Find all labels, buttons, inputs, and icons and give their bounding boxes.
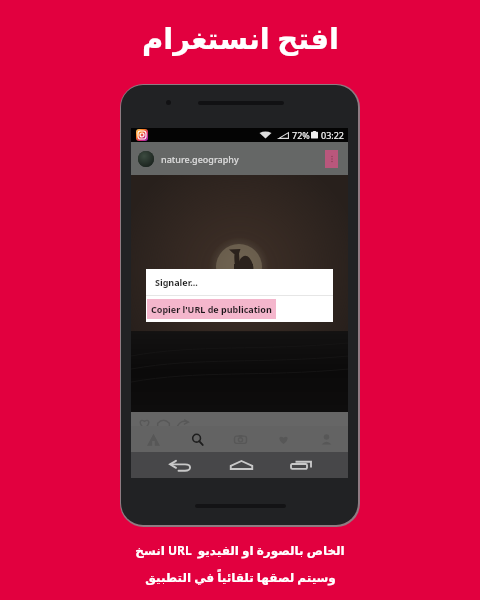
staticText: Signaler... — [155, 276, 198, 288]
staticText: وسيتم لصقها تلقائياً في التطبيق — [145, 569, 336, 585]
staticText: Copier l'URL de publication — [151, 303, 272, 315]
button[interactable]: Copier l'URL de publication — [146, 296, 333, 322]
button[interactable]: Recents — [283, 452, 319, 478]
staticText: انسخ URL الخاص بالصورة او الفيديو — [135, 542, 345, 558]
button[interactable]: Signaler... — [146, 269, 333, 295]
staticText: 72% — [292, 129, 310, 141]
staticText: nature.geography — [161, 153, 239, 165]
staticText: 03:22 — [321, 129, 345, 141]
button[interactable]: Home — [223, 452, 259, 478]
button[interactable]: More options — [325, 150, 338, 168]
staticText: افتح انستغرام — [142, 18, 339, 57]
button[interactable]: Back — [162, 452, 198, 478]
button[interactable]: Search — [175, 426, 219, 452]
